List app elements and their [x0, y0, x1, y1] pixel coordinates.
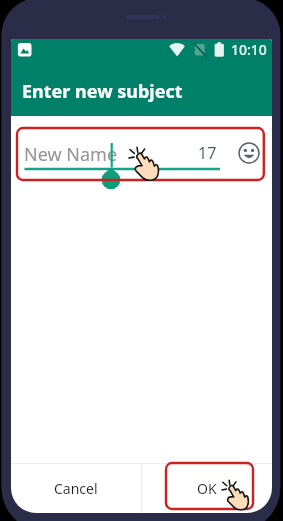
staticText: 10:10 — [231, 40, 267, 59]
staticText: Cancel — [54, 479, 98, 498]
staticText: Enter new subject — [22, 79, 183, 104]
button[interactable]: OK — [142, 464, 272, 513]
button[interactable]: New Name — [19, 132, 224, 174]
staticText: New Name — [24, 142, 118, 167]
button[interactable]: Cancel — [11, 464, 141, 513]
button[interactable]: Emoji — [234, 138, 264, 168]
staticText: 17 — [198, 142, 217, 164]
staticText: OK — [197, 479, 217, 498]
